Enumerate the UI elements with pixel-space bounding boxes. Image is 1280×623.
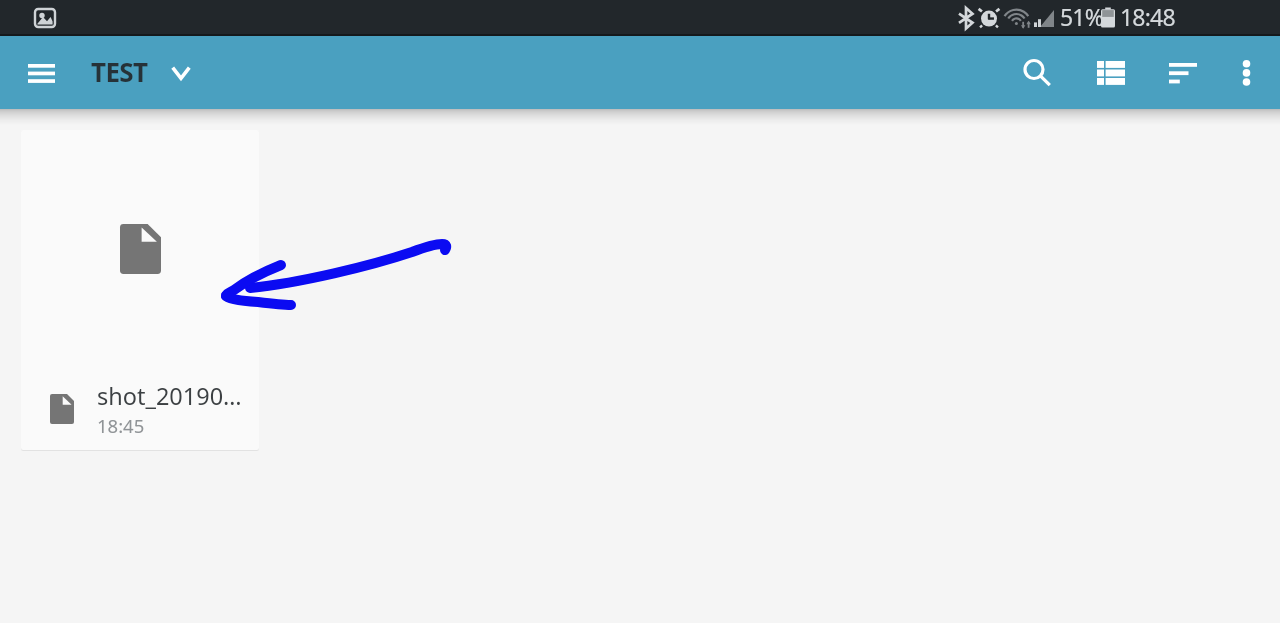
- button[interactable]: TEST: [91, 55, 191, 90]
- button[interactable]: More options: [1228, 49, 1265, 97]
- button[interactable]: Search: [1012, 45, 1062, 97]
- staticText: TEST: [91, 54, 148, 89]
- button[interactable]: View as list: [1086, 50, 1136, 96]
- staticText: 18:45: [97, 413, 145, 438]
- button[interactable]: Menu: [16, 48, 66, 98]
- staticText: 18:48: [1120, 1, 1175, 32]
- button[interactable]: Sort: [1158, 52, 1208, 95]
- button[interactable]: shot_20190…: [21, 130, 259, 450]
- staticText: shot_20190…: [97, 380, 242, 412]
- staticText: 51%: [1060, 1, 1104, 32]
